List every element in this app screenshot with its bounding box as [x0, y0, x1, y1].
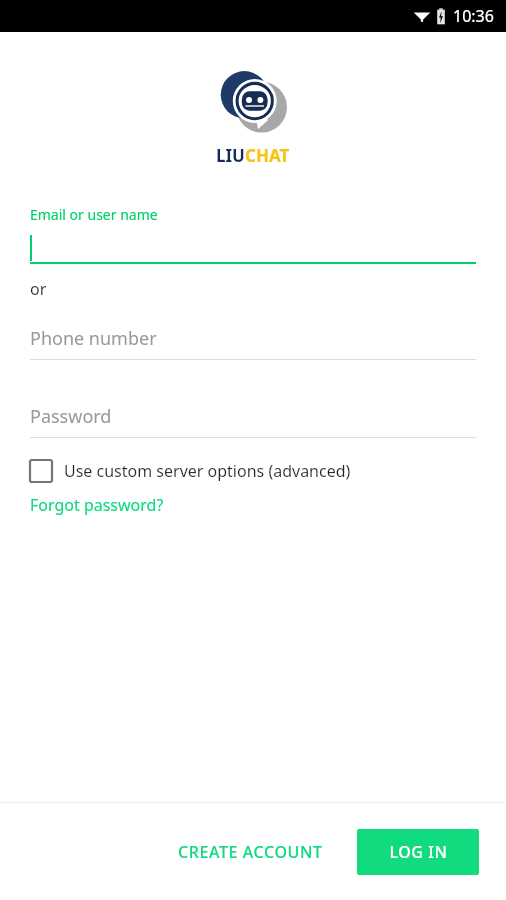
button[interactable]: Password — [30, 404, 476, 438]
staticText: Password — [30, 404, 112, 429]
staticText: CHAT — [245, 144, 290, 167]
staticText: Phone number — [30, 326, 157, 351]
button[interactable]: Phone number — [30, 326, 476, 360]
staticText: 10:36 — [453, 5, 494, 27]
button[interactable]: CREATE ACCOUNT — [164, 831, 337, 873]
staticText: LIU — [216, 144, 245, 167]
staticText: Use custom server options (advanced) — [64, 460, 351, 482]
staticText: LOG IN — [389, 841, 448, 863]
staticText: or — [30, 278, 47, 300]
button[interactable]: LOG IN — [357, 829, 479, 875]
staticText: CREATE ACCOUNT — [178, 841, 323, 863]
button[interactable]: Email or user name — [30, 205, 476, 264]
button[interactable]: Use custom server options (advanced) — [30, 460, 476, 482]
staticText: Email or user name — [30, 205, 158, 224]
staticText: Forgot password? — [30, 494, 164, 516]
button[interactable]: Forgot password? — [30, 494, 164, 516]
